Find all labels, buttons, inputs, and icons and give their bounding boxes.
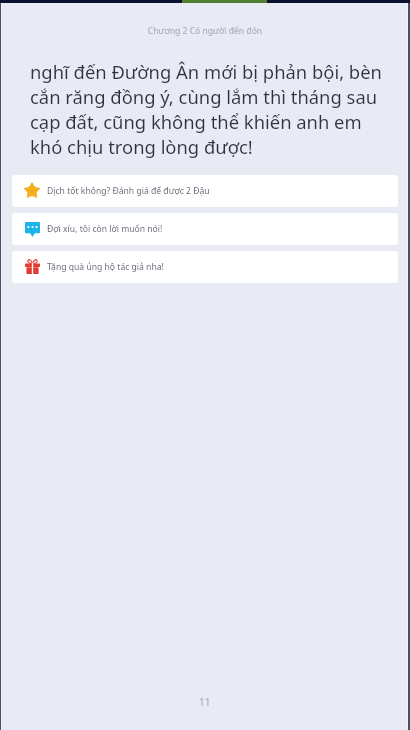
staticText: Đợi xíu, tôi còn lời muốn nói!	[47, 223, 163, 235]
staticText: nghĩ đến Đường Ân mới bị phản bội, bèn c…	[30, 59, 391, 159]
other: Rate translation	[24, 182, 40, 198]
button[interactable]: Send a gift	[12, 251, 398, 283]
staticText: Chương 2 Có người đến đón	[0, 25, 410, 37]
button[interactable]: Rate translation	[12, 175, 398, 207]
button[interactable]: Leave a comment	[12, 213, 398, 245]
staticText: Tặng quà ủng hộ tác giả nha!	[47, 261, 164, 273]
staticText: Dịch tốt không? Đánh giá để được 2 Đậu	[47, 185, 210, 197]
staticText: 11	[199, 695, 211, 709]
other: Leave a comment	[25, 222, 40, 237]
other: Send a gift	[25, 259, 40, 274]
